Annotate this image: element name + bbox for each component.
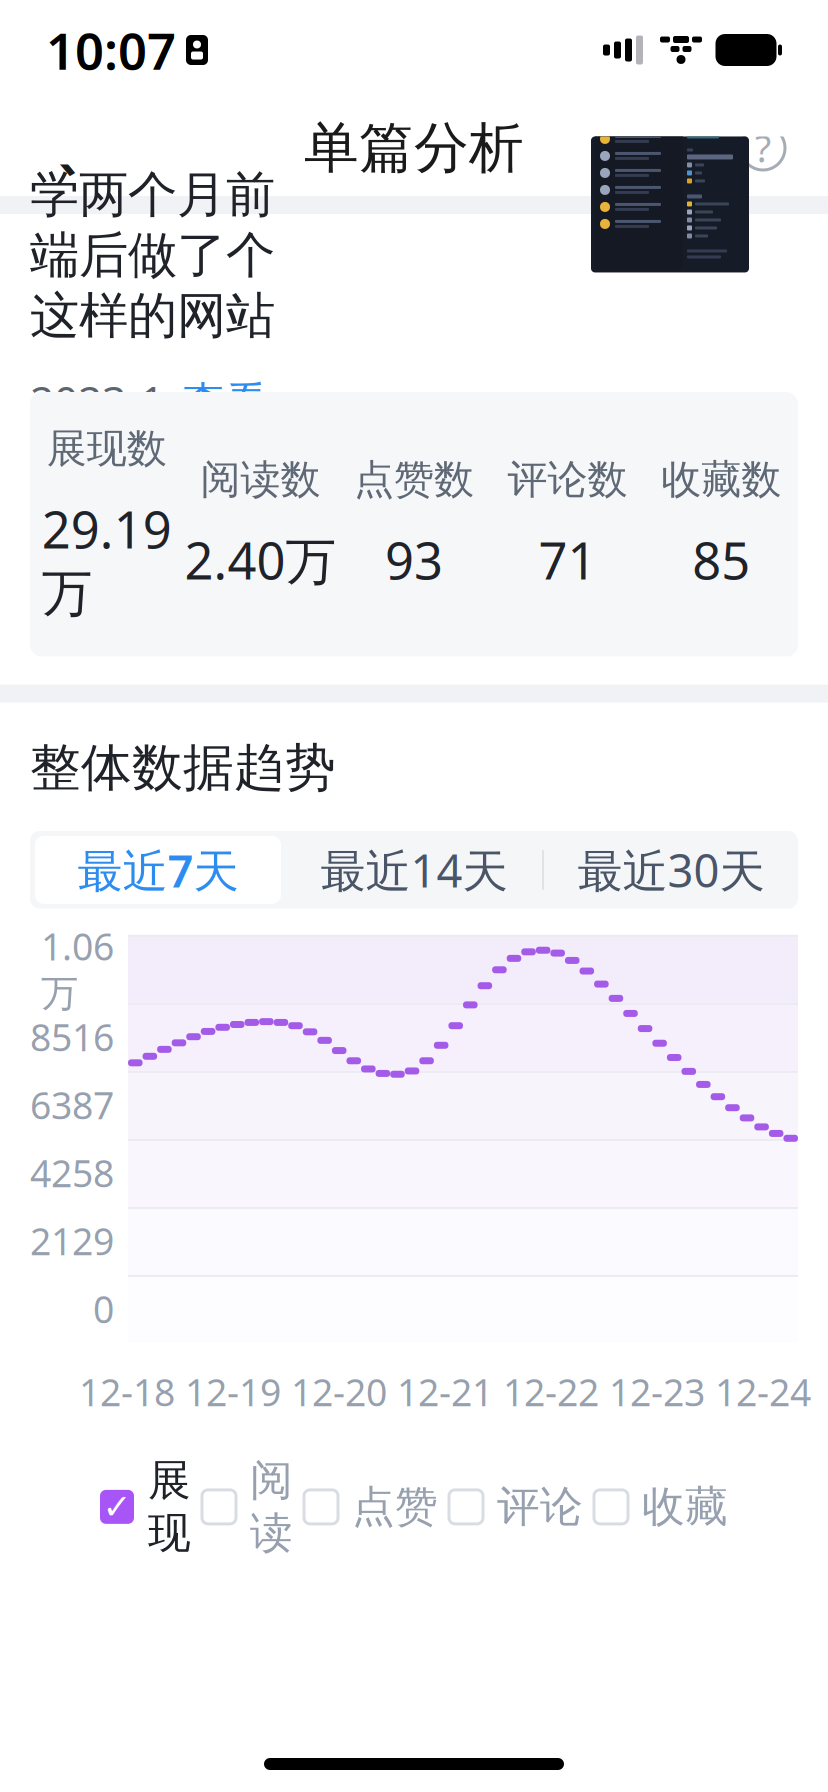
staticText: 6387 [30, 1080, 114, 1130]
staticText: 12-23 [609, 1367, 705, 1416]
staticText: 2129 [30, 1216, 114, 1266]
button[interactable]: 最近14天 [286, 831, 542, 909]
staticText: 评论数 [508, 455, 628, 504]
staticText: 71 [539, 526, 597, 593]
staticText: 29.19万 [42, 495, 172, 625]
staticText: 学两个月前端后做了个这样的网站 [30, 164, 275, 346]
staticText: 2023-12-1 [30, 372, 164, 485]
staticText: 8516 [30, 1012, 114, 1062]
staticText: 评论 [497, 1481, 583, 1533]
staticText: 阅读 [250, 1454, 293, 1559]
staticText: 整体数据趋势 [30, 737, 336, 799]
staticText: 查看原文 [182, 376, 268, 481]
button[interactable]: 返回 [20, 103, 110, 193]
staticText: 12-21 [397, 1367, 493, 1416]
staticText: 12-18 [79, 1367, 175, 1416]
button[interactable]: 评论 [449, 1469, 583, 1545]
staticText: 阅读数 [200, 455, 320, 504]
staticText: 点赞 [352, 1481, 438, 1533]
button[interactable]: 查看原文 [182, 376, 268, 481]
staticText: 12-20 [291, 1367, 387, 1416]
staticText: 12-24 [715, 1367, 811, 1416]
staticText: 最近30天 [577, 840, 764, 900]
staticText: 展现 [148, 1454, 191, 1559]
button[interactable]: 最近30天 [544, 831, 798, 909]
button[interactable]: 阅读 [202, 1442, 293, 1571]
staticText: 收藏数 [661, 455, 781, 504]
button[interactable]: 最近7天 [30, 831, 286, 909]
staticText: ? [755, 123, 771, 173]
staticText: 12-19 [185, 1367, 281, 1416]
staticText: 12-22 [503, 1367, 599, 1416]
staticText: 2.40万 [184, 526, 336, 593]
staticText: 最近7天 [77, 840, 238, 900]
staticText: 1.06万 [41, 921, 114, 1017]
button[interactable]: 收藏 [594, 1469, 728, 1545]
staticText: 0 [93, 1284, 114, 1334]
button[interactable]: 帮助 [718, 103, 808, 193]
button[interactable]: ✓ [100, 1442, 191, 1571]
staticText: 单篇分析 [304, 114, 524, 181]
button[interactable]: 点赞 [304, 1469, 438, 1545]
staticText: 10:07 [46, 16, 176, 84]
staticText: 收藏 [642, 1481, 728, 1533]
staticText: 4258 [30, 1148, 114, 1198]
staticText: 85 [692, 526, 750, 593]
staticText: 展现数 [47, 424, 167, 473]
staticText: 点赞数 [354, 455, 474, 504]
staticText: 93 [385, 526, 443, 593]
staticText: ✓ [102, 1487, 131, 1526]
staticText: ‹ [52, 91, 78, 205]
staticText: 最近14天 [320, 840, 507, 900]
